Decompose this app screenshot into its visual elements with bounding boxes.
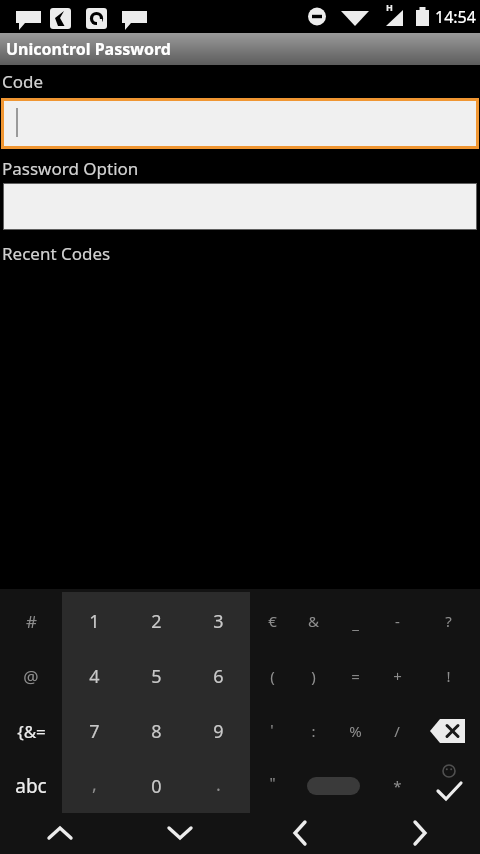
staticText: Password Option bbox=[2, 157, 139, 180]
staticText: 0 bbox=[151, 774, 162, 799]
staticText: = bbox=[351, 666, 360, 686]
button[interactable]: ! bbox=[426, 655, 470, 697]
staticText: Code bbox=[2, 70, 44, 93]
staticText: " bbox=[269, 772, 276, 792]
button[interactable]: € bbox=[250, 600, 294, 642]
staticText: , bbox=[92, 772, 97, 797]
button[interactable]: " bbox=[250, 761, 294, 803]
staticText: ! bbox=[446, 666, 451, 686]
staticText: # bbox=[26, 610, 37, 633]
button[interactable]: Enter bbox=[428, 762, 468, 808]
button[interactable]: + bbox=[375, 655, 419, 697]
button[interactable]: 9 bbox=[196, 710, 240, 752]
staticText: Unicontrol Password bbox=[6, 38, 171, 60]
button[interactable]: 2 bbox=[134, 600, 178, 642]
button[interactable]: * bbox=[375, 765, 419, 807]
staticText: + bbox=[393, 666, 402, 686]
button[interactable]: # bbox=[9, 600, 53, 642]
button[interactable]: Backspace bbox=[430, 718, 467, 744]
button[interactable]: _ bbox=[333, 602, 377, 644]
staticText: & bbox=[308, 611, 319, 631]
staticText: % bbox=[349, 721, 362, 741]
staticText: / bbox=[394, 721, 400, 741]
staticText: 4 bbox=[89, 664, 100, 689]
button[interactable]: Next bbox=[390, 812, 450, 854]
button[interactable]: , bbox=[72, 763, 116, 805]
button[interactable]: 1 bbox=[72, 600, 116, 642]
button[interactable]: ( bbox=[250, 655, 294, 697]
button[interactable]: 0 bbox=[134, 765, 178, 807]
staticText: ) bbox=[311, 666, 316, 686]
staticText: 3 bbox=[213, 609, 224, 634]
staticText: . bbox=[216, 772, 221, 797]
staticText: 6 bbox=[213, 664, 224, 689]
button[interactable]: @ bbox=[9, 655, 53, 697]
button[interactable]: ' bbox=[250, 708, 294, 750]
staticText: * bbox=[393, 776, 402, 796]
staticText: H bbox=[386, 1, 393, 13]
staticText: : bbox=[311, 721, 316, 741]
button[interactable] bbox=[1, 98, 479, 149]
button[interactable]: 5 bbox=[134, 655, 178, 697]
staticText: 9 bbox=[213, 719, 224, 744]
button[interactable]: 7 bbox=[72, 710, 116, 752]
button[interactable]: / bbox=[375, 710, 419, 752]
staticText: ' bbox=[270, 719, 274, 739]
button[interactable]: & bbox=[291, 600, 335, 642]
button[interactable]: ? bbox=[426, 600, 470, 642]
staticText: @ bbox=[23, 665, 39, 688]
staticText: 5 bbox=[151, 664, 162, 689]
button[interactable]: Up bbox=[30, 812, 90, 854]
staticText: 2 bbox=[151, 609, 162, 634]
button[interactable]: - bbox=[375, 600, 419, 642]
staticText: abc bbox=[15, 773, 47, 799]
button[interactable]: = bbox=[333, 655, 377, 697]
button[interactable]: % bbox=[333, 710, 377, 752]
button[interactable]: Down bbox=[150, 812, 210, 854]
staticText: ? bbox=[445, 611, 452, 631]
button[interactable]: 4 bbox=[72, 655, 116, 697]
staticText: € bbox=[268, 611, 277, 631]
button[interactable] bbox=[3, 183, 477, 230]
button[interactable]: . bbox=[196, 763, 240, 805]
staticText: Recent Codes bbox=[2, 242, 111, 265]
staticText: _ bbox=[352, 613, 359, 633]
staticText: 8 bbox=[151, 719, 162, 744]
button[interactable]: Previous bbox=[270, 812, 330, 854]
button[interactable]: : bbox=[291, 710, 335, 752]
button[interactable]: abc bbox=[9, 765, 53, 807]
staticText: - bbox=[395, 611, 400, 631]
staticText: 7 bbox=[89, 719, 100, 744]
button[interactable]: 3 bbox=[196, 600, 240, 642]
staticText: 14:54 bbox=[435, 6, 476, 28]
button[interactable]: ) bbox=[291, 655, 335, 697]
staticText: 1 bbox=[89, 609, 100, 634]
button[interactable]: {&= bbox=[9, 710, 53, 752]
button[interactable]: 8 bbox=[134, 710, 178, 752]
staticText: {&= bbox=[17, 720, 46, 743]
button[interactable]: 6 bbox=[196, 655, 240, 697]
button[interactable]: Space bbox=[307, 777, 360, 795]
staticText: ( bbox=[270, 666, 275, 686]
